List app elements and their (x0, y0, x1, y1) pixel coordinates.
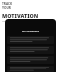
button[interactable] (7, 46, 54, 54)
button[interactable] (7, 36, 54, 44)
staticText: MOTIVATION (2, 12, 39, 19)
button[interactable] (7, 56, 54, 64)
staticText: MY PROGRESS (5, 29, 56, 32)
staticText: Lorem ipsum dolor sit amet consectetur e… (2, 20, 36, 22)
staticText: TRACK (2, 2, 13, 6)
button[interactable] (7, 66, 54, 72)
staticText: YOUR (2, 6, 11, 10)
